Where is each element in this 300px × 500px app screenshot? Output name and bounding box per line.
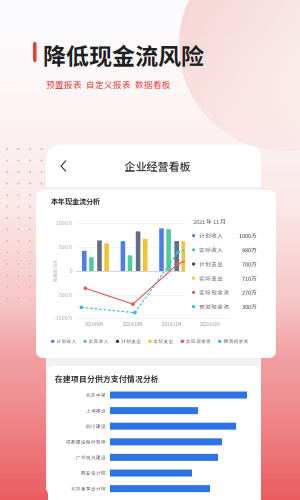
staticText: 2021年11月 [161, 321, 181, 327]
staticText: 计划收入 [199, 231, 223, 240]
staticText: -500万 [57, 292, 73, 298]
staticText: 1000万 [56, 220, 73, 226]
staticText: 实际现金流 [199, 288, 229, 296]
staticText: 0 [70, 268, 73, 274]
staticText: 降低现金流风险 [43, 38, 204, 71]
staticText: 成都建设股份有限 [66, 438, 106, 445]
staticText: 2021年12月 [200, 321, 220, 327]
staticText: 西安设计院 [81, 470, 106, 476]
staticText: 700万 [242, 260, 257, 268]
staticText: 实际收入 [89, 338, 109, 345]
staticText: 上海建设 [86, 407, 106, 414]
staticText: 500万 [59, 244, 73, 250]
staticText: 2021年10月 [123, 321, 143, 327]
staticText: 北京中某 [86, 392, 106, 398]
staticText: -1000万 [54, 315, 73, 321]
staticText: 计划支出 [121, 338, 141, 345]
staticText: 四川建设 [86, 423, 106, 430]
staticText: 实际支出 [154, 338, 174, 345]
staticText: 计划收入 [56, 338, 76, 345]
staticText: 现金流/万元 [44, 268, 66, 274]
staticText: 1000万 [239, 231, 257, 240]
staticText: 企业经营看板 [124, 158, 190, 174]
staticText: 本年现金流分析 [51, 196, 100, 206]
staticText: 计划支出 [199, 260, 223, 268]
staticText: 2021 年 11 月 [193, 217, 226, 226]
staticText: 实际现金流 [186, 338, 211, 345]
staticText: 2021年9月 [85, 321, 103, 327]
staticText: 710万 [242, 274, 257, 282]
staticText: 预置报表 自定义报表 数据看板 [46, 78, 171, 90]
staticText: 预测现金流 [199, 302, 229, 311]
staticText: 300万 [242, 302, 257, 311]
staticText: 实际收入 [199, 246, 223, 254]
staticText: 实际支出 [199, 274, 223, 282]
staticText: 在建项目分供方支付情况分析 [55, 373, 159, 384]
staticText: 980万 [242, 246, 257, 254]
staticText: 270万 [242, 288, 257, 296]
staticText: 预测现金流 [223, 338, 248, 345]
staticText: 北京重某设计院 [71, 485, 106, 492]
button[interactable]: 返回 [54, 156, 74, 176]
staticText: 广州旭光建设 [76, 454, 106, 461]
